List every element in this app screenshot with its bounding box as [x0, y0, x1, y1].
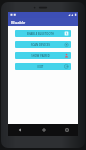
- button[interactable]: SCAN DEVICES: [15, 41, 71, 48]
- button[interactable]: Home: [32, 124, 55, 136]
- button[interactable]: ENABLE BLUETOOTH: [15, 30, 71, 37]
- staticText: SCAN DEVICES: [17, 43, 64, 47]
- staticText: Bluable: [11, 20, 26, 25]
- button[interactable]: Recent apps: [55, 124, 78, 136]
- staticText: EXIT: [17, 65, 64, 69]
- staticText: SHOW PAIRED: [17, 54, 64, 58]
- other: ENABLE BLUETOOTH: [64, 31, 69, 36]
- other: EXIT: [64, 64, 69, 69]
- button[interactable]: SHOW PAIRED: [15, 52, 71, 59]
- other: SCAN DEVICES: [64, 42, 69, 47]
- other: SHOW PAIRED: [64, 53, 69, 58]
- staticText: ENABLE BLUETOOTH: [17, 32, 64, 36]
- button[interactable]: EXIT: [15, 63, 71, 70]
- button[interactable]: Back: [8, 124, 32, 136]
